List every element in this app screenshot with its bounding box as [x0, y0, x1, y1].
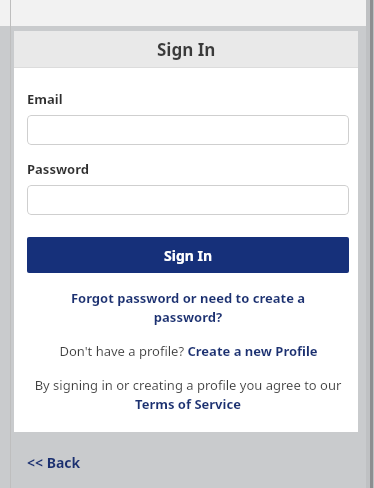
- staticText: Email: [27, 90, 63, 108]
- staticText: << Back: [27, 453, 81, 472]
- button[interactable]: Forgot password or need to create a pass…: [27, 289, 349, 326]
- staticText: Sign In: [157, 38, 216, 61]
- staticText: Forgot password or need to create a pass…: [55, 289, 321, 326]
- button[interactable]: Back: [27, 453, 81, 472]
- button[interactable]: [27, 115, 349, 145]
- button[interactable]: Don't have a profile? Create a new Profi…: [27, 342, 349, 360]
- button[interactable]: Sign In: [27, 237, 349, 273]
- button[interactable]: [27, 185, 349, 215]
- staticText: By signing in or creating a profile you …: [33, 376, 343, 413]
- button[interactable]: By signing in or creating a profile you …: [27, 376, 349, 413]
- staticText: Don't have a profile? Create a new Profi…: [59, 342, 318, 360]
- staticText: Sign In: [164, 246, 213, 265]
- staticText: Password: [27, 160, 89, 178]
